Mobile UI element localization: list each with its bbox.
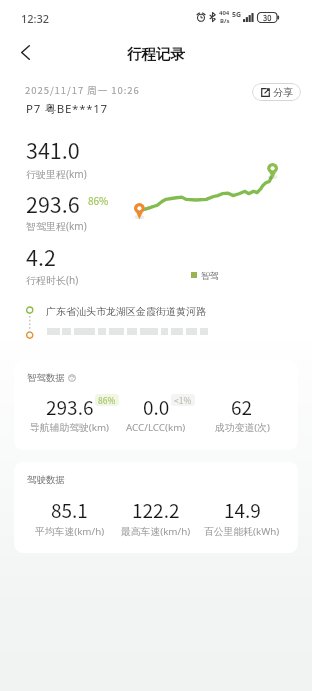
staticText: 0.0: [143, 393, 170, 421]
staticText: 广东省汕头市龙湖区金霞街道黄河路: [46, 305, 206, 318]
button[interactable]: Back: [5, 32, 45, 72]
staticText: 成功变道(次): [215, 421, 270, 434]
staticText: 30: [263, 12, 272, 23]
staticText: 293.6: [26, 188, 80, 219]
staticText: 分享: [273, 86, 293, 99]
staticText: 62: [231, 393, 253, 421]
staticText: 4.2: [26, 241, 56, 272]
staticText: 导航辅助驾驶(km): [30, 421, 110, 434]
staticText: 智驾数据: [27, 372, 65, 384]
staticText: <1%: [174, 394, 192, 406]
staticText: 2025/11/17 周一 10:26: [25, 83, 140, 97]
button[interactable]: 智驾数据: [14, 360, 298, 450]
staticText: 293.6: [46, 393, 94, 421]
staticText: 341.0: [26, 134, 80, 165]
staticText: 85.1: [51, 496, 88, 524]
staticText: 驾驶数据: [27, 474, 65, 486]
staticText: 5G: [232, 10, 242, 20]
staticText: 最高车速(km/h): [121, 525, 191, 538]
staticText: 行程记录: [127, 45, 185, 63]
staticText: 行驶里程(km): [26, 167, 87, 181]
staticText: P7 粤BE***17: [26, 101, 108, 117]
staticText: B/s: [220, 17, 230, 25]
staticText: 404: [219, 9, 230, 17]
staticText: 百公里能耗(kWh): [204, 525, 280, 538]
staticText: 86%: [98, 394, 116, 406]
staticText: 平均车速(km/h): [35, 525, 105, 538]
staticText: 122.2: [132, 496, 180, 524]
button[interactable]: 分享: [252, 83, 301, 101]
staticText: ACC/LCC(km): [126, 421, 186, 434]
staticText: 14.9: [224, 496, 261, 524]
staticText: 行程时长(h): [26, 273, 79, 287]
staticText: 智驾: [201, 270, 219, 281]
staticText: 12:32: [21, 11, 50, 26]
staticText: 智驾里程(km): [26, 219, 87, 233]
button[interactable]: 驾驶数据: [14, 462, 298, 553]
staticText: 86%: [88, 193, 109, 207]
